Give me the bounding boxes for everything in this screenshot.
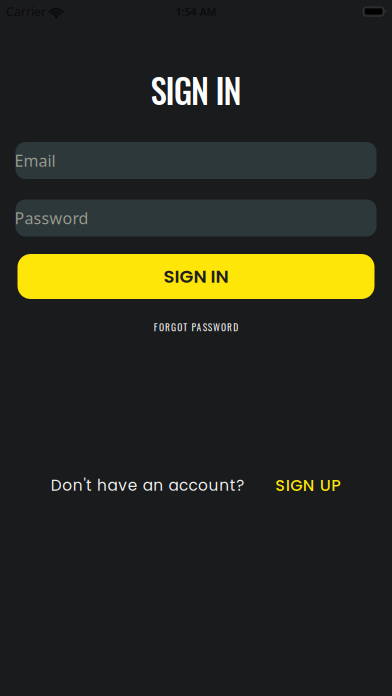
staticText: Password bbox=[14, 207, 88, 229]
staticText: FORGOT PASSWORD bbox=[154, 320, 238, 334]
staticText: Don't have an account? bbox=[51, 475, 244, 496]
button[interactable]: SIGN UP bbox=[275, 474, 341, 497]
staticText: Carrier bbox=[6, 3, 46, 19]
button[interactable]: SIGN IN bbox=[17, 254, 374, 299]
textField[interactable]: Email bbox=[14, 150, 190, 171]
staticText: SIGN IN bbox=[163, 264, 228, 289]
staticText: 1:54 AM bbox=[175, 4, 216, 19]
staticText: SIGN IN bbox=[150, 65, 242, 114]
staticText: Email bbox=[14, 150, 55, 171]
staticText: SIGN UP bbox=[275, 474, 341, 497]
button[interactable]: FORGOT PASSWORD bbox=[154, 320, 238, 334]
textField[interactable]: Password bbox=[14, 207, 190, 229]
